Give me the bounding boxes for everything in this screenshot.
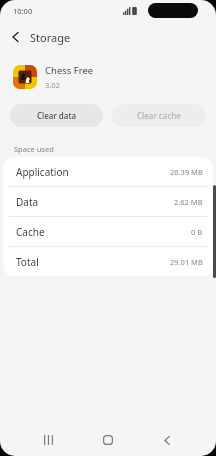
staticText: 26.39 MB — [170, 167, 203, 177]
staticText: Data — [16, 195, 39, 209]
button[interactable]: Clear data — [10, 104, 103, 127]
staticText: Space used — [14, 144, 54, 154]
staticText: Application — [16, 165, 69, 179]
staticText: 10:00 — [13, 6, 33, 16]
staticText: 3.02 — [45, 80, 60, 90]
staticText: 2.62 MB — [174, 197, 203, 207]
button[interactable]: Clear cache — [112, 104, 206, 127]
button[interactable]: Application — [3, 157, 213, 186]
button[interactable] — [36, 428, 60, 452]
button[interactable] — [155, 428, 179, 452]
button[interactable]: Cache — [3, 217, 213, 246]
staticText: 0 B — [191, 227, 203, 237]
staticText: Storage — [30, 30, 71, 45]
staticText: 29.01 MB — [170, 257, 203, 267]
button[interactable]: Data — [3, 187, 213, 216]
staticText: Cache — [16, 225, 45, 239]
button[interactable] — [0, 22, 30, 52]
staticText: Chess Free — [45, 64, 94, 77]
button[interactable] — [96, 428, 120, 452]
button[interactable]: Total — [3, 247, 213, 276]
staticText: Clear cache — [137, 110, 181, 121]
staticText: Clear data — [37, 110, 77, 121]
staticText: Total — [16, 255, 39, 269]
